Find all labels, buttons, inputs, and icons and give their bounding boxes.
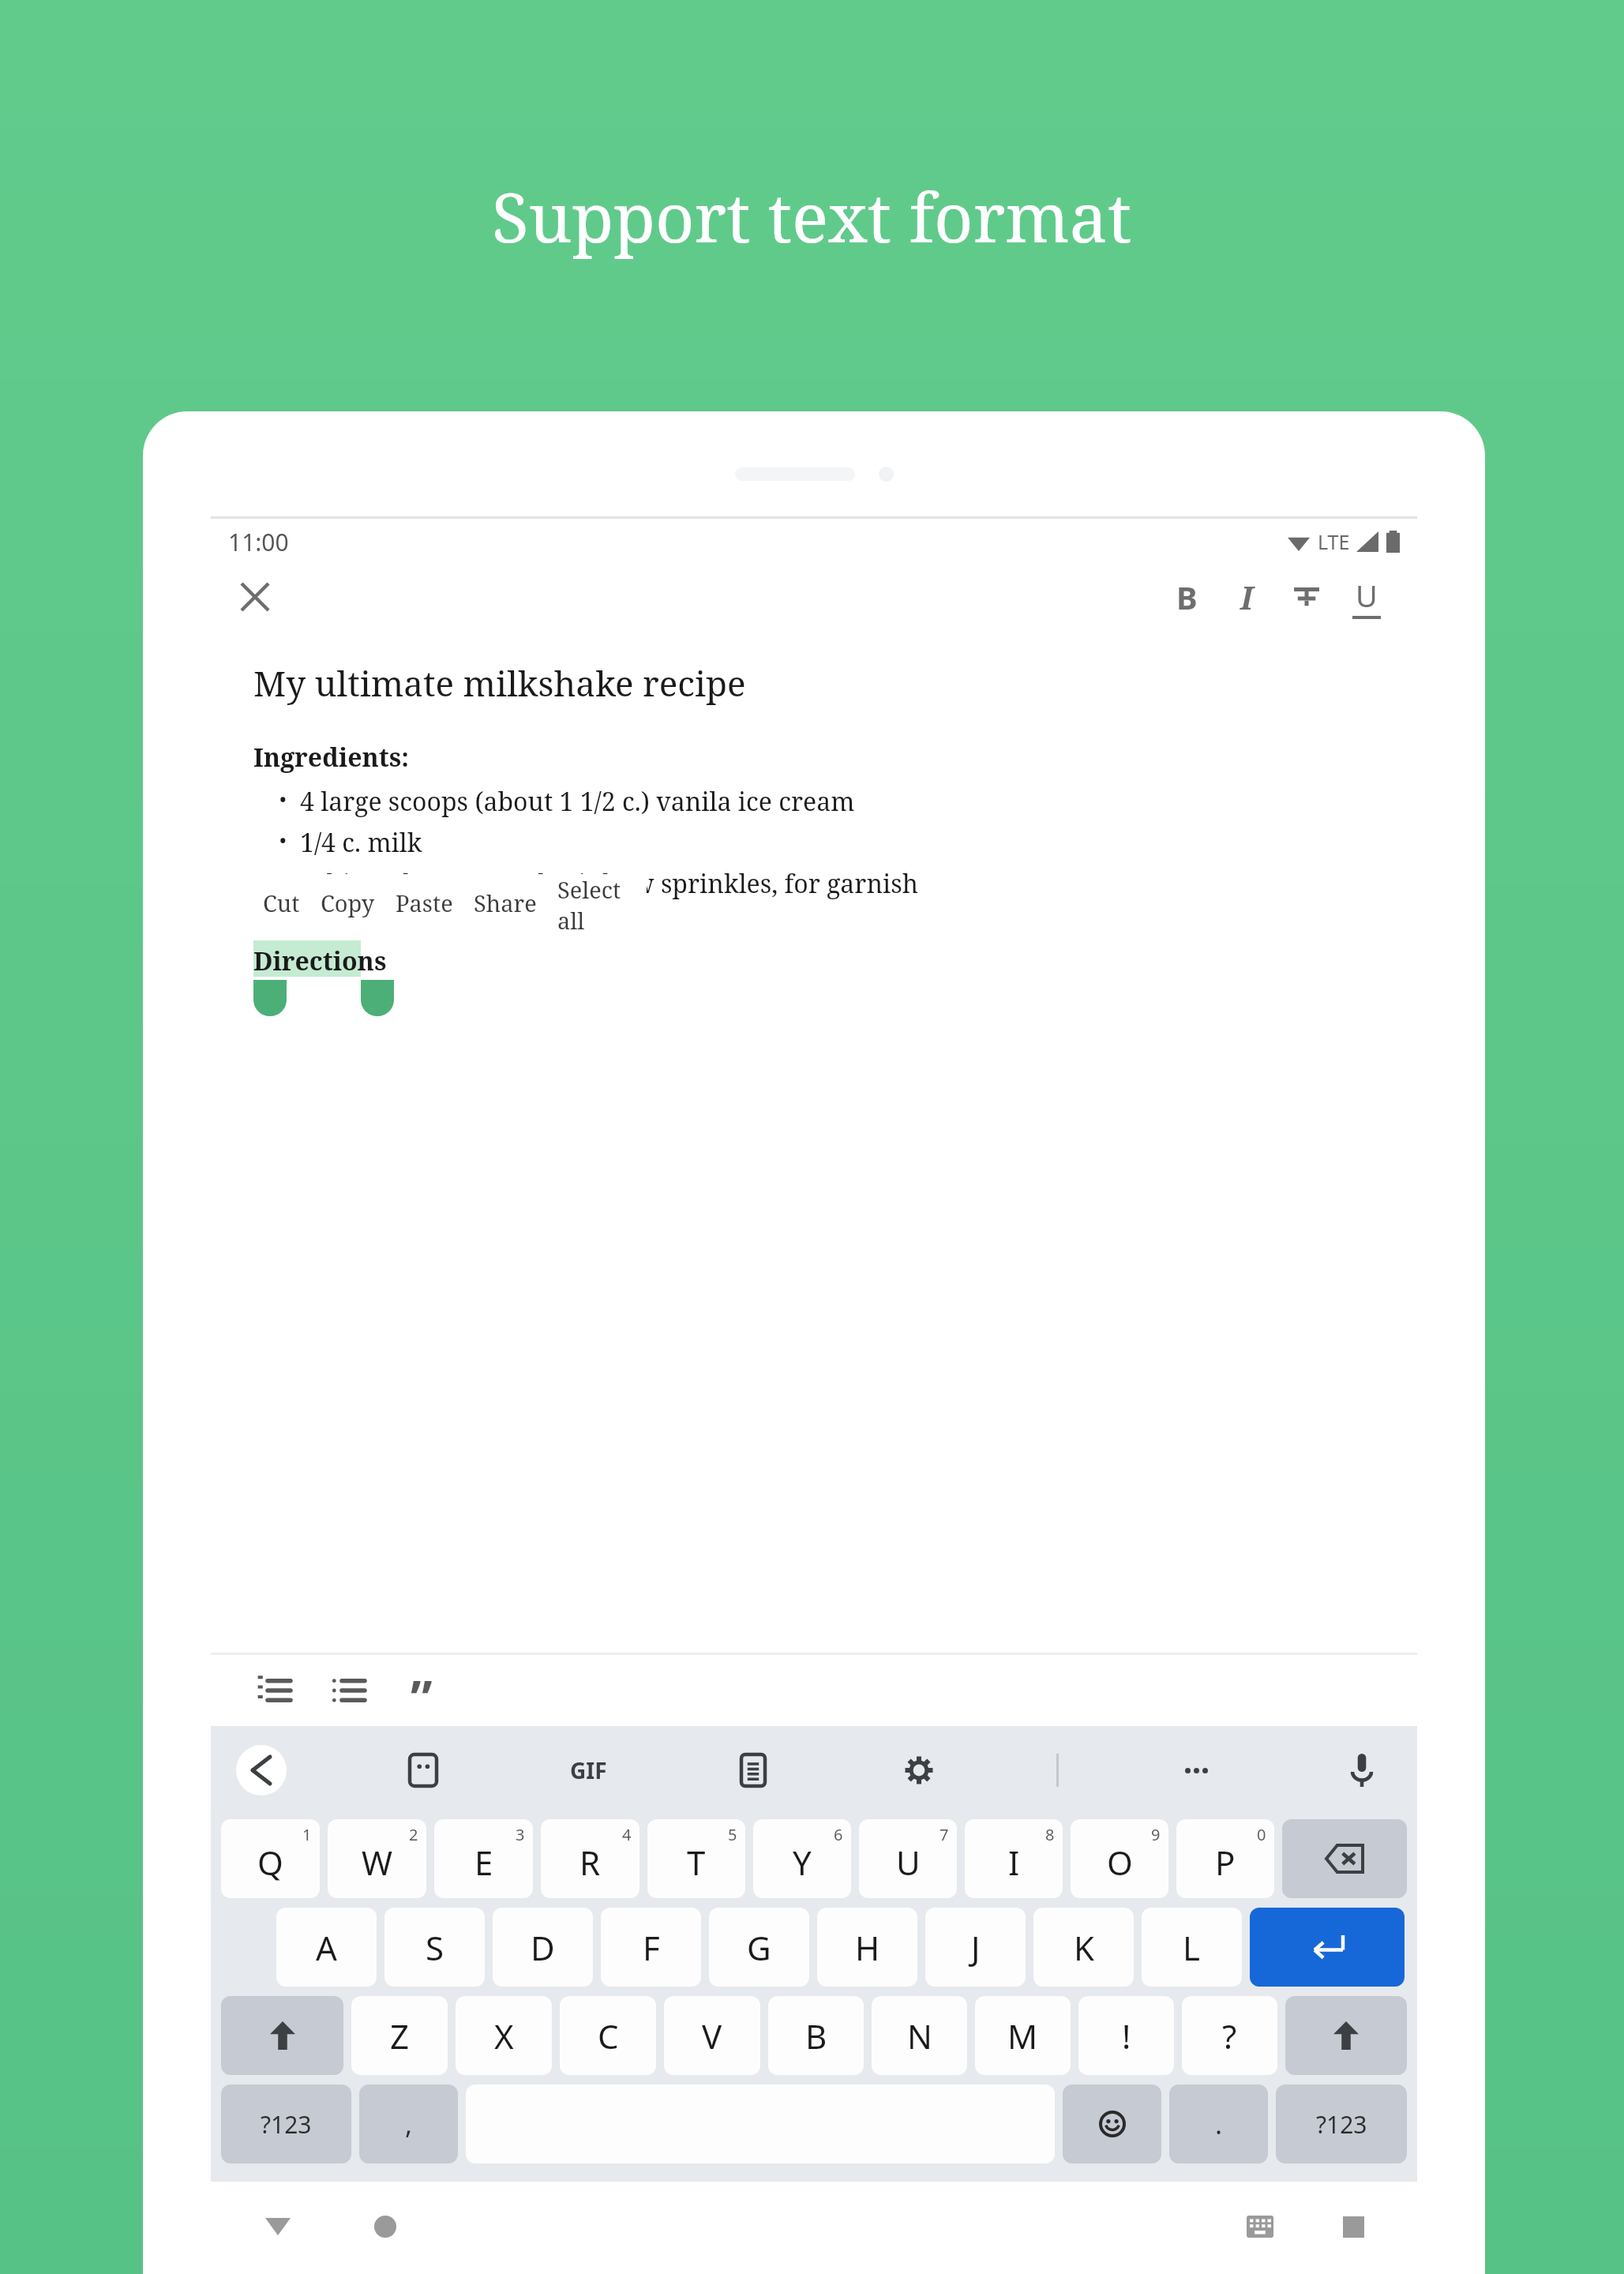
button[interactable]: 5 [647,1819,745,1898]
staticText: F [643,1925,660,1970]
button[interactable]: G [709,1908,809,1987]
button[interactable]: Shift [221,1996,343,2075]
button[interactable]: Voice input [1333,1742,1390,1799]
button[interactable]: N [872,1996,967,2075]
staticText: D [531,1925,555,1970]
button[interactable]: K [1033,1908,1134,1987]
button[interactable]: B [1157,567,1217,627]
staticText: ? [1222,2013,1237,2058]
staticText: U [896,1840,921,1885]
button[interactable]: H [817,1908,917,1987]
staticText: 6 [834,1824,843,1845]
staticText: S [426,1925,444,1970]
button[interactable]: D [493,1908,593,1987]
button[interactable]: X [456,1996,552,2075]
staticText: 7 [940,1824,949,1845]
staticText: 1/4 c. milk [300,825,422,860]
button[interactable]: More [1168,1742,1225,1799]
button[interactable]: C [560,1996,656,2075]
button[interactable]: 3 [434,1819,533,1898]
button[interactable]: 6 [753,1819,851,1898]
staticText: M [1007,2013,1038,2058]
button[interactable]: Back [253,2202,302,2251]
button[interactable]: Clipboard [725,1742,782,1799]
staticText: 8 [1045,1824,1055,1845]
staticText: 4 [622,1824,632,1845]
button[interactable]: A [276,1908,377,1987]
button[interactable]: M [975,1996,1071,2075]
button[interactable]: 1 [221,1819,320,1898]
staticText: • [279,825,287,855]
staticText: . [1215,2106,1223,2142]
staticText: Q [257,1840,283,1885]
button[interactable]: Quote [396,1664,448,1717]
button[interactable]: Select all [557,874,626,931]
button[interactable]: F [601,1908,701,1987]
button[interactable]: ?123 [1276,2084,1407,2163]
button[interactable]: Home [361,2202,410,2251]
button[interactable]: S [384,1908,485,1987]
button[interactable]: Stickers [395,1742,452,1799]
button[interactable]: Bulleted list [321,1664,373,1717]
staticText: I [1008,1840,1020,1885]
button[interactable]: Shift [1285,1996,1407,2075]
button[interactable]: Numbered list [247,1664,299,1717]
button[interactable]: . [1169,2084,1268,2163]
button[interactable]: Underline [1337,567,1397,627]
staticText: LTE [1318,528,1350,555]
staticText: Directions [253,944,387,978]
button[interactable]: V [664,1996,760,2075]
button[interactable]: Keyboard [1236,2202,1285,2251]
staticText: T [687,1840,706,1885]
staticText: ?123 [261,2108,312,2141]
button[interactable]: Close [225,567,285,627]
button[interactable]: Cut [263,887,300,918]
button[interactable]: ? [1182,1996,1277,2075]
staticText: B [805,2013,827,2058]
button[interactable]: Copy [321,887,375,918]
staticText: Y [793,1840,812,1885]
staticText: U [1356,575,1378,616]
button[interactable]: Paste [396,887,453,918]
staticText: B [1176,576,1198,618]
button[interactable]: Strikethrough [1277,567,1337,627]
staticText: Whipped cream and rainbow sprinkles, for… [300,866,919,901]
staticText: N [907,2013,932,2058]
button[interactable]: ?123 [221,2084,351,2163]
button[interactable]: J [925,1908,1026,1987]
button[interactable]: 2 [328,1819,426,1898]
staticText: ” [411,1664,433,1717]
staticText: V [702,2013,722,2058]
button[interactable]: 8 [965,1819,1063,1898]
button[interactable]: 0 [1176,1819,1274,1898]
button[interactable]: Recents [1329,2202,1378,2251]
button[interactable]: , [359,2084,458,2163]
button[interactable]: B [768,1996,864,2075]
staticText: Copy [321,887,375,918]
button[interactable]: Enter [1250,1908,1405,1987]
staticText: 9 [1151,1824,1161,1845]
button[interactable]: 9 [1071,1819,1168,1898]
button[interactable]: Z [351,1996,448,2075]
staticText: 0 [1257,1824,1266,1845]
staticText: My ultimate milkshake recipe [253,659,746,707]
button[interactable]: 7 [859,1819,957,1898]
button[interactable]: 4 [541,1819,639,1898]
button[interactable]: Backspace [1282,1819,1407,1898]
staticText: Share [474,887,537,918]
staticText: 1 [302,1824,312,1845]
staticText: Ingredients: [253,740,409,775]
staticText: ?123 [1316,2108,1367,2141]
button[interactable]: Italic [1217,567,1277,627]
staticText: ! [1122,2013,1131,2058]
button[interactable]: L [1142,1908,1242,1987]
staticText: 11:00 [228,526,289,558]
button[interactable]: Back [236,1745,287,1796]
button[interactable]: GIF [560,1742,617,1799]
button[interactable]: Share [474,887,537,918]
button[interactable]: Settings [891,1742,947,1799]
button[interactable]: Emoji [1063,2084,1161,2163]
button[interactable]: ! [1078,1996,1174,2075]
